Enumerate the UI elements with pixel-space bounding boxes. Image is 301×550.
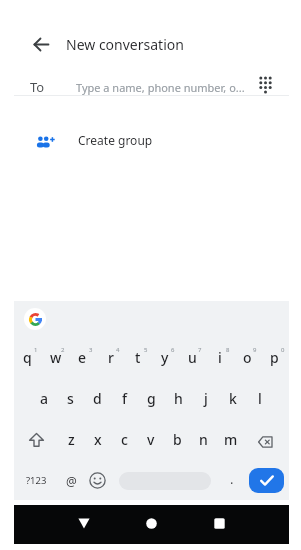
staticText: Create group — [78, 132, 153, 148]
button[interactable]: r — [97, 337, 124, 378]
button[interactable]: u — [179, 337, 206, 378]
button[interactable] — [22, 426, 50, 453]
staticText: s — [67, 389, 74, 408]
staticText: f — [122, 389, 127, 408]
button[interactable]: t — [124, 337, 151, 378]
button[interactable]: i — [206, 337, 233, 378]
staticText: u — [188, 348, 197, 367]
staticText: q — [23, 348, 32, 367]
staticText: 4 — [116, 346, 120, 354]
button[interactable]: b — [164, 419, 191, 460]
staticText: n — [199, 430, 208, 449]
staticText: t — [135, 348, 141, 367]
button[interactable]: c — [111, 419, 138, 460]
staticText: w — [50, 348, 62, 367]
staticText: a — [40, 389, 49, 408]
staticText: e — [78, 348, 87, 367]
staticText: i — [218, 348, 222, 367]
staticText: c — [121, 430, 128, 449]
button[interactable] — [137, 509, 165, 537]
button[interactable]: k — [219, 378, 246, 419]
button[interactable]: j — [192, 378, 219, 419]
button[interactable]: e — [69, 337, 96, 378]
button[interactable]: . — [223, 467, 241, 491]
button[interactable]: q — [14, 337, 41, 378]
button[interactable]: f — [111, 378, 138, 419]
button[interactable] — [252, 72, 278, 98]
button[interactable] — [249, 468, 284, 493]
button[interactable]: Create group — [14, 122, 289, 156]
staticText: 7 — [198, 346, 202, 354]
button[interactable] — [85, 468, 109, 493]
staticText: 5 — [144, 346, 148, 354]
button[interactable]: @ — [59, 467, 83, 494]
staticText: 1 — [34, 346, 38, 354]
staticText: m — [224, 430, 238, 449]
staticText: New conversation — [66, 35, 184, 54]
button[interactable]: d — [84, 378, 111, 419]
button[interactable]: l — [246, 378, 273, 419]
staticText: b — [173, 430, 182, 449]
button[interactable] — [27, 30, 55, 58]
staticText: @ — [66, 473, 77, 489]
button[interactable]: s — [57, 378, 84, 419]
button[interactable]: a — [31, 378, 58, 419]
staticText: z — [68, 430, 75, 449]
button[interactable]: n — [190, 419, 217, 460]
staticText: 8 — [226, 346, 230, 354]
button[interactable]: x — [84, 419, 111, 460]
staticText: d — [93, 389, 102, 408]
staticText: ?123 — [26, 474, 47, 487]
button[interactable]: z — [58, 419, 85, 460]
staticText: r — [108, 348, 114, 367]
staticText: Type a name, phone number, o... — [76, 80, 245, 95]
button[interactable]: h — [165, 378, 192, 419]
staticText: y — [161, 348, 169, 367]
staticText: 6 — [171, 346, 175, 354]
staticText: x — [94, 430, 102, 449]
button[interactable]: v — [137, 419, 164, 460]
staticText: j — [204, 389, 208, 408]
button[interactable] — [24, 308, 46, 330]
button[interactable] — [252, 428, 280, 455]
button[interactable]: g — [138, 378, 165, 419]
button[interactable] — [205, 509, 233, 537]
button[interactable]: m — [217, 419, 244, 460]
button[interactable]: w — [42, 337, 69, 378]
staticText: . — [230, 470, 234, 488]
staticText: 2 — [61, 346, 65, 354]
button[interactable]: p — [261, 337, 288, 378]
staticText: h — [174, 389, 183, 408]
button[interactable] — [70, 509, 98, 537]
staticText: l — [258, 389, 262, 408]
staticText: g — [147, 389, 156, 408]
staticText: p — [270, 348, 279, 367]
staticText: To — [30, 78, 45, 96]
staticText: v — [147, 430, 155, 449]
button[interactable]: o — [234, 337, 261, 378]
button[interactable]: ?123 — [19, 467, 53, 494]
staticText: 0 — [281, 346, 285, 354]
staticText: 9 — [253, 346, 257, 354]
staticText: o — [243, 348, 252, 367]
button[interactable]: y — [151, 337, 178, 378]
staticText: 3 — [89, 346, 93, 354]
staticText: k — [229, 389, 237, 408]
